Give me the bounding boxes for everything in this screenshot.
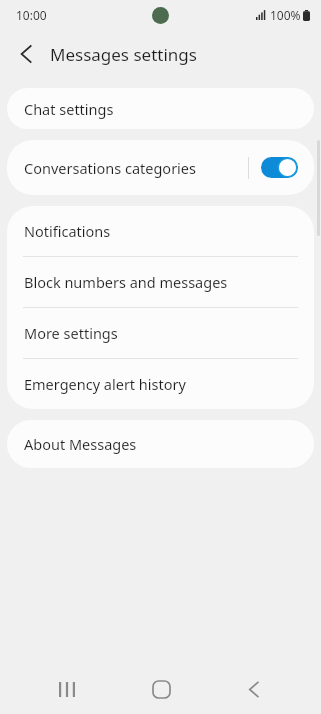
staticText: More settings [24,323,118,343]
staticText: About Messages [24,434,137,454]
button[interactable]: Back [8,36,44,72]
button[interactable]: More settings [7,308,314,358]
button[interactable]: Block numbers and messages [7,257,314,307]
button[interactable]: Conversations categories toggle [261,157,298,178]
button[interactable]: Chat settings [7,88,314,129]
staticText: Chat settings [24,99,114,119]
button[interactable]: Emergency alert history [7,359,314,409]
button[interactable]: Recent apps [40,664,94,714]
staticText: Messages settings [50,43,197,66]
button[interactable]: About Messages [7,420,314,468]
staticText: Conversations categories [24,158,248,178]
button[interactable]: Home [134,664,188,714]
staticText: 10:00 [16,7,47,23]
staticText: Notifications [24,221,111,241]
staticText: Block numbers and messages [24,272,228,292]
staticText: Emergency alert history [24,374,186,394]
button[interactable]: Back [227,664,281,714]
staticText: 100% [270,7,301,23]
button[interactable]: Conversations categories [7,140,314,195]
button[interactable]: Notifications [7,206,314,256]
